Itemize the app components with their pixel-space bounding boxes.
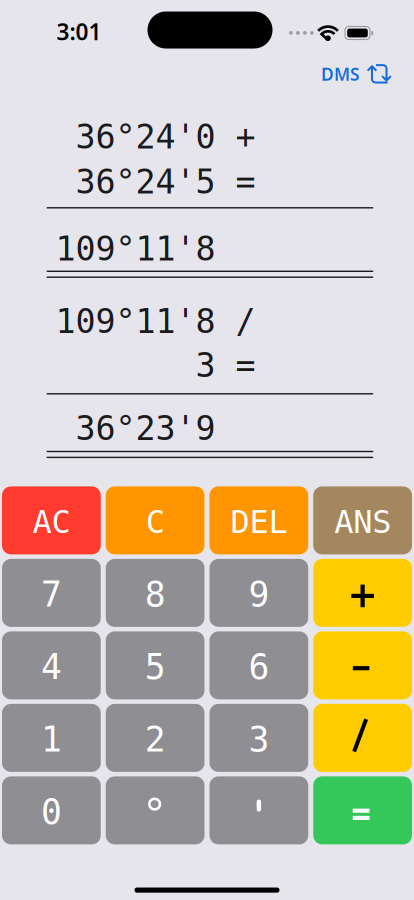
staticText: 9 [248, 575, 269, 614]
button[interactable]: Equals [313, 776, 412, 844]
button[interactable]: Divide [313, 704, 412, 772]
staticText: 36°24'0 + [75, 118, 255, 156]
button[interactable]: 1 [2, 704, 101, 772]
staticText: ANS [334, 504, 391, 540]
staticText: 0 [41, 792, 62, 831]
button[interactable]: Degrees [106, 776, 205, 844]
button[interactable]: DEL [209, 486, 308, 554]
staticText: 4 [41, 647, 62, 686]
button[interactable]: Minutes [209, 776, 308, 844]
staticText: AC [32, 504, 70, 540]
button[interactable]: 6 [209, 631, 308, 699]
staticText: 8 [145, 575, 166, 614]
button[interactable]: 8 [106, 559, 205, 627]
button[interactable]: 7 [2, 559, 101, 627]
button[interactable]: 5 [106, 631, 205, 699]
staticText: DEL [230, 504, 287, 540]
staticText: 6 [248, 647, 269, 686]
button[interactable]: 4 [2, 631, 101, 699]
staticText: 7 [41, 575, 62, 614]
staticText: 3:01 [56, 16, 101, 47]
button[interactable]: 9 [209, 559, 308, 627]
staticText: 5 [145, 647, 166, 686]
staticText: 2 [145, 720, 166, 759]
staticText: 3 = [195, 346, 255, 384]
button[interactable]: AC [2, 486, 101, 554]
button[interactable]: ANS [313, 486, 412, 554]
staticText: 36°24'5 = [75, 163, 255, 201]
button[interactable]: C [106, 486, 205, 554]
button[interactable]: 0 [2, 776, 101, 844]
staticText: 109°11'8 [56, 230, 216, 268]
staticText: C [146, 504, 165, 540]
staticText: DMS [321, 62, 360, 85]
button[interactable]: Add [313, 559, 412, 627]
button[interactable]: 2 [106, 704, 205, 772]
staticText: 109°11'8 / [55, 302, 255, 340]
staticText: 36°23'9 [76, 409, 216, 447]
button[interactable]: 3 [209, 704, 308, 772]
staticText: 3 [248, 720, 269, 759]
button[interactable]: Subtract [313, 631, 412, 699]
staticText: 1 [41, 720, 62, 759]
button[interactable]: DMS [295, 57, 391, 91]
